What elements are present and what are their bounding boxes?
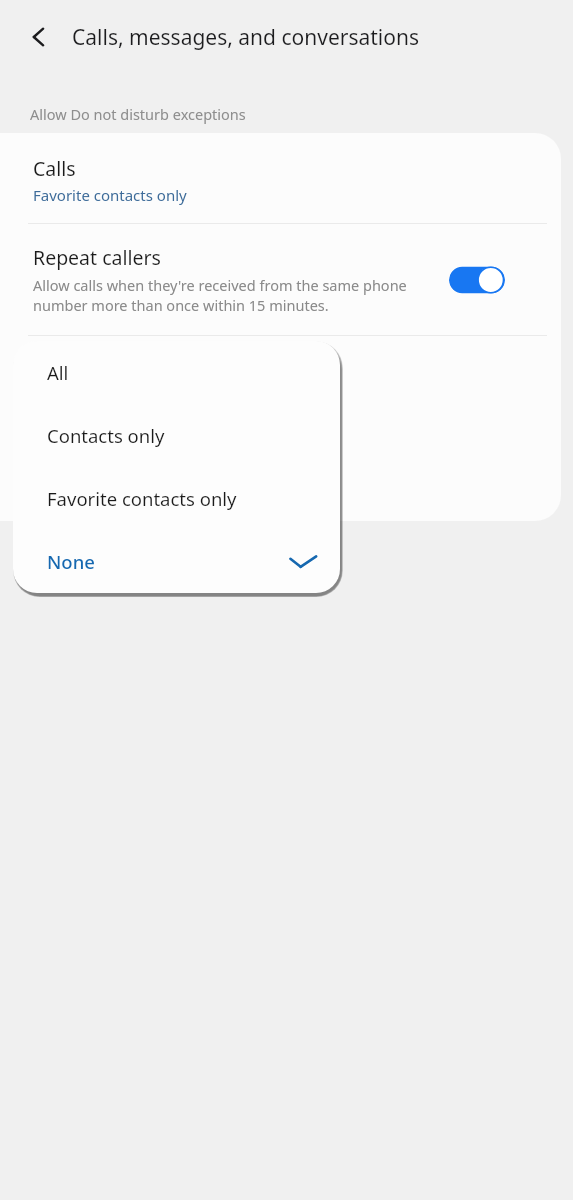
staticText: Contacts only (47, 423, 165, 448)
button[interactable]: Calls (0, 133, 561, 223)
button[interactable]: Back (12, 10, 66, 64)
button[interactable]: All (13, 341, 340, 404)
staticText: Calls (33, 155, 76, 182)
staticText: Calls, messages, and conversations (72, 23, 419, 52)
staticText: Repeat callers (33, 244, 161, 271)
staticText: Allow calls when they're received from t… (33, 275, 443, 315)
button[interactable]: Repeat callers toggle, on (449, 265, 505, 295)
staticText: Allow Do not disturb exceptions (30, 104, 246, 124)
button[interactable]: Favorite contacts only (13, 467, 340, 530)
staticText: Favorite contacts only (33, 185, 187, 205)
staticText: None (47, 549, 95, 574)
button[interactable]: Contacts only (13, 404, 340, 467)
staticText: All (47, 360, 69, 385)
staticText: Favorite contacts only (47, 486, 237, 511)
button[interactable]: None (13, 530, 340, 593)
button[interactable]: Repeat callers (0, 224, 561, 335)
